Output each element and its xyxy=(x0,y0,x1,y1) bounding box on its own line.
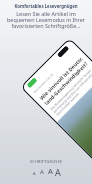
staticText: Die Bundesregierung will mehr Tempo bei … xyxy=(50,67,92,117)
button[interactable]: A xyxy=(54,166,62,176)
staticText: A xyxy=(33,171,36,176)
button[interactable]: A xyxy=(30,166,38,176)
button[interactable]: A xyxy=(38,166,46,176)
staticText: VON MARIA CAS SE xyxy=(33,72,55,94)
staticText: A xyxy=(40,168,44,176)
staticText: A xyxy=(55,166,61,176)
staticText: Lesen Sie alle Artikel im bequemen Lesem… xyxy=(4,10,88,29)
staticText: Wie sinnvoll ist Deutsch- land-Geschwind… xyxy=(38,55,89,106)
staticText: A xyxy=(48,166,53,176)
staticText: Komfortables Lesevergnügen xyxy=(14,3,78,9)
button[interactable]: A xyxy=(46,166,54,176)
staticText: SCHRIFTGRÖSSE xyxy=(30,159,63,164)
